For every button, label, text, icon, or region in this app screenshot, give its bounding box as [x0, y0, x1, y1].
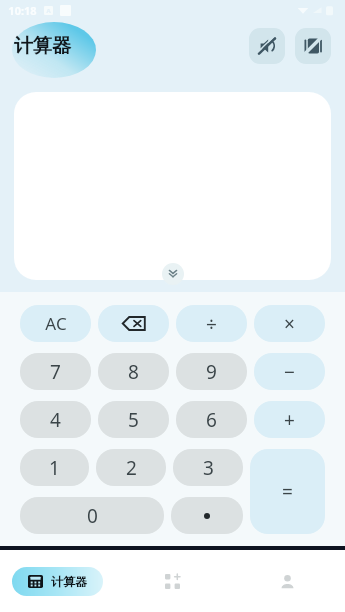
button[interactable]: History off: [295, 28, 331, 64]
button[interactable]: 计算器: [12, 567, 103, 596]
staticText: 2: [126, 455, 137, 481]
button[interactable]: Profile: [230, 550, 345, 612]
button[interactable]: [14, 92, 331, 280]
staticText: =: [282, 479, 293, 505]
staticText: 3: [203, 455, 214, 481]
staticText: AC: [45, 312, 67, 335]
staticText: 6: [206, 407, 217, 433]
staticText: 计算器: [14, 34, 71, 58]
button[interactable]: Mute: [249, 28, 285, 64]
staticText: 0: [87, 503, 98, 529]
button[interactable]: Decimal point: [171, 497, 243, 534]
staticText: 5: [128, 407, 139, 433]
staticText: ×: [284, 311, 295, 337]
staticText: 1: [49, 455, 60, 481]
button[interactable]: 6: [176, 401, 247, 438]
staticText: 9: [206, 359, 217, 385]
button[interactable]: Add app: [115, 550, 230, 612]
button[interactable]: Backspace: [98, 305, 169, 342]
staticText: −: [284, 359, 295, 385]
button[interactable]: 7: [20, 353, 91, 390]
button[interactable]: +: [254, 401, 325, 438]
button[interactable]: 2: [96, 449, 166, 486]
staticText: 7: [50, 359, 61, 385]
staticText: +: [284, 407, 295, 433]
staticText: A: [46, 7, 51, 15]
button[interactable]: ×: [254, 305, 325, 342]
staticText: 4: [50, 407, 61, 433]
button[interactable]: 1: [20, 449, 89, 486]
staticText: 10:18: [8, 3, 37, 18]
button[interactable]: ÷: [176, 305, 247, 342]
button[interactable]: 9: [176, 353, 247, 390]
button[interactable]: 5: [98, 401, 169, 438]
staticText: 8: [128, 359, 139, 385]
staticText: ÷: [206, 311, 217, 337]
button[interactable]: −: [254, 353, 325, 390]
staticText: 计算器: [51, 574, 87, 589]
button[interactable]: 4: [20, 401, 91, 438]
button[interactable]: 3: [173, 449, 243, 486]
button[interactable]: AC: [20, 305, 91, 342]
button[interactable]: =: [250, 449, 325, 534]
button[interactable]: 0: [20, 497, 164, 534]
button[interactable]: 8: [98, 353, 169, 390]
button[interactable]: Expand: [162, 263, 184, 285]
